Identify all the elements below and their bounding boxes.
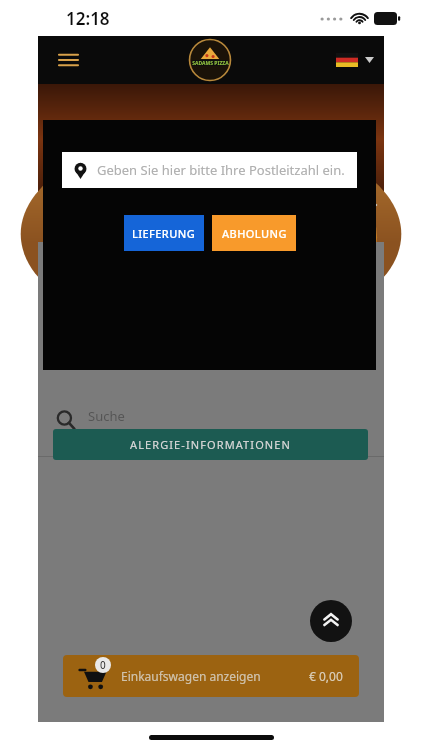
- staticText: 0: [100, 658, 106, 672]
- staticText: Suche: [88, 407, 125, 425]
- button[interactable]: Language: German: [336, 53, 374, 67]
- button[interactable]: Menu: [52, 44, 84, 76]
- button[interactable]: Next slide: [364, 196, 382, 214]
- staticText: SADAMS PIZZA: [192, 60, 229, 67]
- staticText: Geben Sie hier bitte Ihre Postleitzahl e…: [97, 161, 345, 179]
- staticText: € 0,00: [309, 668, 343, 684]
- staticText: LIEFERUNG: [132, 226, 196, 241]
- staticText: ABHOLUNG: [222, 226, 287, 241]
- staticText: ALERGIE-INFORMATIONEN: [130, 437, 291, 452]
- button[interactable]: ABHOLUNG: [212, 215, 296, 251]
- staticText: 12:18: [66, 7, 110, 30]
- button[interactable]: Geben Sie hier bitte Ihre Postleitzahl e…: [62, 152, 357, 188]
- button[interactable]: Suche: [38, 398, 384, 442]
- button[interactable]: ALERGIE-INFORMATIONEN: [53, 429, 368, 460]
- staticText: Einkaufswagen anzeigen: [121, 668, 309, 684]
- button[interactable]: Scroll to top: [310, 600, 352, 642]
- button[interactable]: 0: [63, 655, 359, 697]
- button[interactable]: LIEFERUNG: [124, 215, 204, 251]
